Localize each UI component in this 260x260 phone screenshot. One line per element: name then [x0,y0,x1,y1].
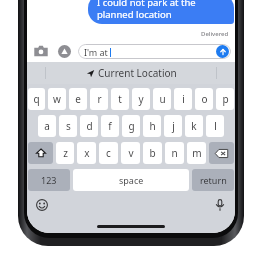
button[interactable]: j [164,115,182,137]
button[interactable]: Backspace [209,142,234,164]
staticText: j [172,119,175,133]
staticText: Delivered [201,30,229,38]
button[interactable]: g [122,115,140,137]
button[interactable]: a [38,115,56,137]
staticText: b [149,146,156,160]
button[interactable]: b [143,142,162,164]
staticText: w [53,92,61,106]
button[interactable]: q [28,88,45,110]
button[interactable]: k [185,115,203,137]
button[interactable]: o [195,88,213,110]
staticText: Current Location [98,66,177,80]
button[interactable]: n [165,142,184,164]
button[interactable]: Apps [54,41,74,61]
staticText: o [201,92,208,106]
button[interactable]: p [216,88,234,110]
button[interactable]: z [56,142,74,164]
button[interactable]: l [206,115,224,137]
button[interactable]: f [101,115,119,137]
staticText: e [75,92,81,106]
button[interactable]: 123 [28,169,70,191]
button[interactable]: Emoji [33,196,51,214]
button[interactable]: I'm at [78,44,231,59]
button[interactable]: Camera [31,41,51,61]
staticText: v [128,146,134,160]
staticText: m [192,146,202,160]
staticText: k [191,119,197,133]
button[interactable]: I could not park at the planned location [88,0,234,24]
button[interactable]: space [73,169,189,191]
button[interactable]: c [99,142,118,164]
staticText: z [63,146,68,160]
button[interactable]: w [48,88,66,110]
staticText: a [44,119,50,133]
button[interactable]: i [174,88,192,110]
staticText: d [86,119,93,133]
button[interactable]: Current Location [27,62,235,84]
button[interactable]: u [153,88,171,110]
staticText: u [159,92,166,106]
staticText: x [84,146,90,160]
staticText: l [214,119,217,133]
button[interactable]: Dictation [211,196,229,214]
button[interactable]: t [111,88,129,110]
button[interactable]: Shift [28,142,53,164]
button[interactable]: v [121,142,140,164]
staticText: I could not park at the planned location [97,0,226,21]
button[interactable]: y [132,88,150,110]
button[interactable]: r [90,88,108,110]
button[interactable]: return [192,169,234,191]
staticText: return [200,174,227,186]
button[interactable]: Send [216,45,229,58]
staticText: space [119,174,144,186]
staticText: g [128,119,135,133]
staticText: r [97,92,102,106]
button[interactable]: m [187,142,206,164]
staticText: I'm at [84,46,108,58]
button[interactable]: s [59,115,77,137]
staticText: i [182,92,185,106]
staticText: q [33,92,40,106]
staticText: n [171,146,178,160]
staticText: c [106,146,111,160]
staticText: s [66,119,71,133]
staticText: h [149,119,156,133]
staticText: t [118,92,122,106]
button[interactable]: h [143,115,161,137]
staticText: y [138,92,144,106]
button[interactable]: d [80,115,98,137]
staticText: 123 [41,174,57,186]
staticText: p [222,92,229,106]
staticText: f [108,119,112,133]
button[interactable]: e [69,88,87,110]
button[interactable]: x [77,142,96,164]
